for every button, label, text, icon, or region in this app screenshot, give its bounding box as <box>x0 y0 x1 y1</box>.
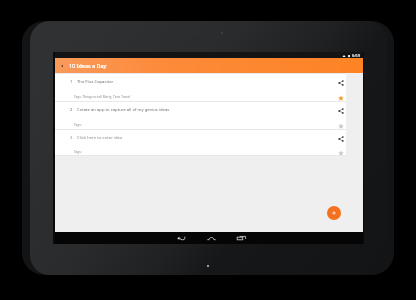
button[interactable]: Back <box>168 232 194 244</box>
staticText: 2 <box>70 107 73 113</box>
button[interactable]: Tags: <box>55 118 346 129</box>
staticText: The Flux Capacitor <box>77 79 114 85</box>
button[interactable]: Add idea <box>327 206 341 220</box>
staticText: Tags: <box>74 150 82 154</box>
staticText: Create an app to capture all of my geniu… <box>77 107 170 113</box>
staticText: Tags: <box>74 123 82 127</box>
button[interactable]: 2 <box>55 102 346 118</box>
staticText: 10 Ideas a Day <box>69 62 107 69</box>
button[interactable]: Back <box>56 60 67 71</box>
staticText: 6:59 <box>352 53 360 58</box>
button[interactable]: Share <box>335 133 346 144</box>
button[interactable]: Tags: <box>55 146 346 155</box>
staticText: Tags: Things to tell Marty, Time Travel <box>74 95 131 99</box>
button[interactable]: 1 <box>55 74 346 90</box>
button[interactable]: 3 <box>55 130 346 146</box>
button[interactable]: Recents <box>228 232 254 244</box>
button[interactable]: Share <box>335 105 346 116</box>
button[interactable]: Share <box>335 77 346 88</box>
button[interactable]: Favorite <box>335 148 346 157</box>
button[interactable]: Home <box>198 232 224 244</box>
staticText: Click here to enter idea <box>77 135 123 141</box>
staticText: 3 <box>70 135 73 141</box>
button[interactable]: Tags: Things to tell Marty, Time Travel <box>55 90 346 101</box>
button[interactable]: Favorite <box>335 120 346 131</box>
button[interactable]: Favorite <box>335 92 346 103</box>
staticText: 1 <box>70 79 73 85</box>
